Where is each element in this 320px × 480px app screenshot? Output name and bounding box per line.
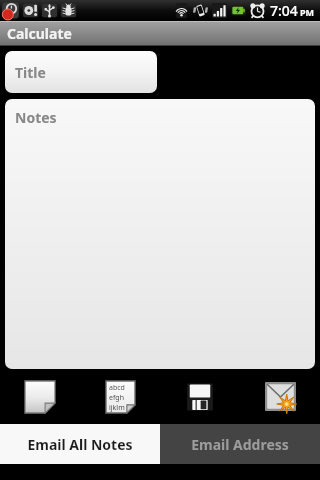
button[interactable]: New note [0,369,80,424]
staticText: Title [15,63,46,82]
staticText: efgh [109,393,124,403]
staticText: abcd [109,383,125,393]
button[interactable]: Email note [240,369,320,424]
button[interactable]: Email All Notes [0,424,160,464]
staticText: 7:04 [270,1,298,20]
button[interactable]: Save [160,369,240,424]
staticText: Calculate [7,24,72,43]
staticText: Notes [15,108,57,127]
button[interactable]: Text note [80,369,160,424]
staticText: ijklm [109,403,125,413]
button[interactable]: Email Address [160,424,320,464]
button[interactable]: Notes [5,99,315,369]
staticText: Email All Notes [27,435,133,454]
staticText: PM [300,6,315,18]
staticText: Email Address [191,435,289,454]
button[interactable]: Title [5,51,157,93]
